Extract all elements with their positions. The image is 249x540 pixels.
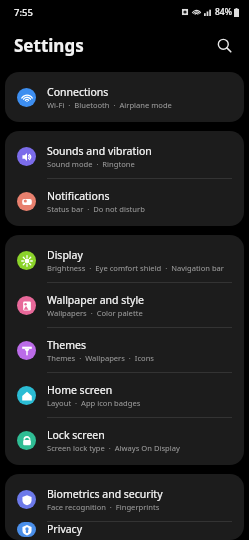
button[interactable]: Lock screen <box>5 418 244 462</box>
staticText: Sound mode · Ringtone <box>47 159 135 169</box>
staticText: Home screen <box>47 383 113 397</box>
staticText: Connections <box>47 85 109 99</box>
staticText: Layout · App icon badges <box>47 398 141 408</box>
staticText: Status bar · Do not disturb <box>47 204 145 214</box>
staticText: Screen lock type · Always On Display <box>47 443 180 453</box>
staticText: Lock screen <box>47 428 105 442</box>
staticText: Wallpapers · Color palette <box>47 308 143 318</box>
staticText: Themes <box>47 338 87 352</box>
staticText: 7:55 <box>14 6 33 19</box>
staticText: Biometrics and security <box>47 487 163 501</box>
button[interactable]: Display <box>5 238 244 282</box>
staticText: Wallpaper and style <box>47 293 145 307</box>
button[interactable]: Notifications <box>5 179 244 223</box>
staticText: Notifications <box>47 189 110 203</box>
button[interactable]: Privacy <box>5 522 244 537</box>
staticText: Sounds and vibration <box>47 144 152 158</box>
staticText: 84% <box>215 6 232 18</box>
staticText: Wi-Fi · Bluetooth · Airplane mode <box>47 100 172 110</box>
staticText: Settings <box>14 34 84 57</box>
staticText: Privacy <box>47 522 83 536</box>
button[interactable]: Search <box>209 30 239 60</box>
staticText: Display <box>47 248 83 262</box>
button[interactable]: Wallpaper and style <box>5 283 244 327</box>
button[interactable]: Biometrics and security <box>5 477 244 521</box>
staticText: Brightness · Eye comfort shield · Naviga… <box>47 263 225 273</box>
button[interactable]: Themes <box>5 328 244 372</box>
button[interactable]: Home screen <box>5 373 244 417</box>
staticText: Face recognition · Fingerprints <box>47 502 160 512</box>
button[interactable]: Sounds and vibration <box>5 134 244 178</box>
button[interactable]: Connections <box>5 75 244 119</box>
staticText: Themes · Wallpapers · Icons <box>47 353 154 363</box>
